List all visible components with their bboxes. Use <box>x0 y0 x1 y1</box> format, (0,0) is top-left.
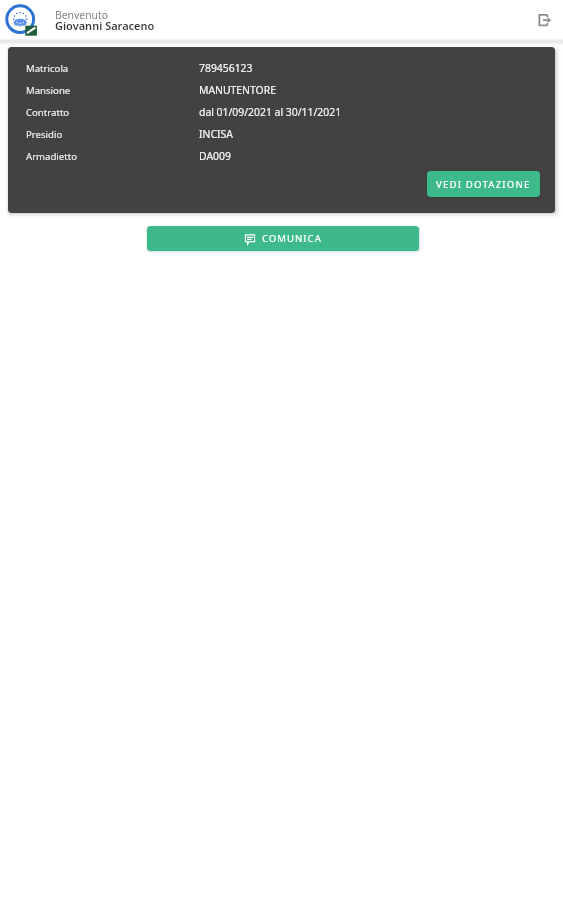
staticText: dal 01/09/2021 al 30/11/2021 <box>199 105 342 119</box>
button[interactable]: COMUNICA <box>147 226 419 251</box>
staticText: COMUNICA <box>262 232 322 245</box>
staticText: Benvenuto <box>55 8 109 22</box>
staticText: DA009 <box>199 149 231 163</box>
staticText: Mansione <box>26 84 199 97</box>
staticText: VEDI DOTAZIONE <box>436 178 531 191</box>
staticText: 789456123 <box>199 61 253 75</box>
button[interactable]: Logout <box>529 5 559 35</box>
button[interactable]: VEDI DOTAZIONE <box>427 171 540 197</box>
staticText: MANUTENTORE <box>199 83 276 97</box>
staticText: Giovanni Saraceno <box>55 18 155 33</box>
staticText: Contratto <box>26 106 199 119</box>
staticText: Armadietto <box>26 150 199 163</box>
staticText: Matricola <box>26 62 199 75</box>
staticText: INCISA <box>199 127 233 141</box>
staticText: Presidio <box>26 128 199 141</box>
